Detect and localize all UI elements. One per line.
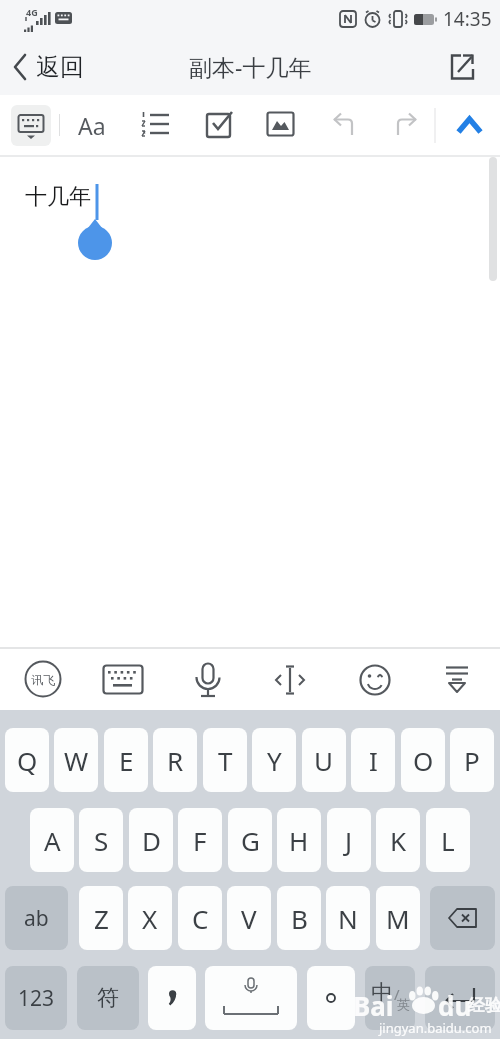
staticText: J <box>345 823 353 858</box>
button[interactable] <box>206 110 234 138</box>
staticText: jingyan.baidu.com <box>379 1019 492 1037</box>
button[interactable] <box>359 664 391 696</box>
button[interactable]: W <box>54 728 98 792</box>
button[interactable]: B <box>277 886 321 950</box>
button[interactable]: I <box>351 728 395 792</box>
button[interactable]: Z <box>79 886 123 950</box>
staticText: E <box>119 743 134 778</box>
button[interactable]: U <box>302 728 346 792</box>
button[interactable]: A <box>30 808 74 872</box>
staticText: D <box>142 823 161 858</box>
staticText: W <box>64 743 89 778</box>
button[interactable]: E <box>104 728 148 792</box>
button[interactable]: R <box>153 728 197 792</box>
button[interactable]: T <box>203 728 247 792</box>
button[interactable]: X <box>128 886 172 950</box>
button[interactable] <box>450 109 488 141</box>
staticText: P <box>464 743 480 778</box>
staticText: G <box>241 823 260 858</box>
staticText: 十几年 <box>25 183 91 211</box>
button[interactable]: G <box>228 808 272 872</box>
button[interactable]: F <box>178 808 222 872</box>
button[interactable] <box>443 666 471 694</box>
staticText: N <box>338 901 358 936</box>
staticText: M <box>386 901 410 936</box>
staticText: R <box>167 743 184 778</box>
button[interactable]: 符 <box>77 966 139 1030</box>
staticText: 英 <box>397 996 410 1012</box>
staticText: 返回 <box>36 52 84 82</box>
button[interactable] <box>205 966 297 1030</box>
button[interactable] <box>430 886 495 950</box>
staticText: 123 <box>18 984 55 1013</box>
staticText: F <box>193 823 207 858</box>
staticText: I <box>369 743 378 778</box>
staticText: O <box>413 743 434 778</box>
button[interactable] <box>103 665 143 695</box>
staticText: S <box>94 823 109 858</box>
staticText: K <box>390 823 407 858</box>
staticText: 经验 <box>468 995 500 1016</box>
staticText: C <box>192 901 209 936</box>
button[interactable] <box>393 113 418 137</box>
button[interactable] <box>11 105 51 146</box>
staticText: 讯飞 <box>31 672 55 687</box>
button[interactable] <box>274 665 306 695</box>
button[interactable]: O <box>401 728 445 792</box>
button[interactable]: D <box>129 808 173 872</box>
staticText: Bai <box>353 988 394 1023</box>
button[interactable]: 123 <box>5 966 67 1030</box>
button[interactable]: S <box>79 808 123 872</box>
button[interactable]: H <box>277 808 321 872</box>
staticText: B <box>291 901 308 936</box>
staticText: L <box>441 823 455 858</box>
staticText: 符 <box>97 984 119 1012</box>
staticText: Q <box>17 743 38 778</box>
button[interactable]: P <box>450 728 494 792</box>
button[interactable] <box>450 54 475 80</box>
button[interactable]: N <box>326 886 370 950</box>
staticText: 中 <box>371 979 393 1007</box>
staticText: V <box>241 901 257 936</box>
button[interactable] <box>425 966 495 1030</box>
button[interactable]: ab <box>5 886 68 950</box>
button[interactable] <box>267 112 295 137</box>
staticText: A <box>44 823 61 858</box>
button[interactable] <box>332 113 357 137</box>
button[interactable] <box>307 966 355 1030</box>
button[interactable] <box>195 663 221 699</box>
staticText: Z <box>94 901 109 936</box>
button[interactable]: Aa <box>78 110 106 141</box>
button[interactable]: V <box>227 886 271 950</box>
staticText: du <box>438 988 472 1023</box>
staticText: T <box>218 743 233 778</box>
staticText: 副本-十几年 <box>189 51 312 82</box>
button[interactable]: J <box>327 808 371 872</box>
button[interactable]: K <box>376 808 420 872</box>
staticText: 4G <box>26 6 38 18</box>
button[interactable]: Y <box>252 728 296 792</box>
button[interactable]: Q <box>5 728 49 792</box>
staticText: 14:35 <box>443 6 492 32</box>
button[interactable]: C <box>178 886 222 950</box>
button[interactable]: M <box>376 886 420 950</box>
button[interactable]: L <box>426 808 470 872</box>
button[interactable]: 中 <box>365 966 415 1030</box>
staticText: / <box>394 984 400 1004</box>
staticText: X <box>142 901 158 936</box>
staticText: Y <box>267 743 282 778</box>
button[interactable] <box>142 111 169 139</box>
staticText: U <box>314 743 334 778</box>
button[interactable] <box>148 966 196 1030</box>
staticText: ab <box>24 904 49 933</box>
button[interactable]: 返回 <box>13 52 84 82</box>
button[interactable]: 讯飞 <box>24 660 62 698</box>
staticText: H <box>289 823 309 858</box>
